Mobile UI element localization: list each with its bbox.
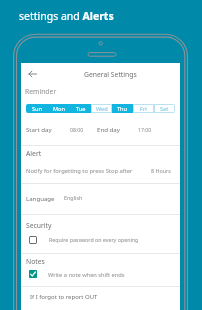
button[interactable]: Sun [26,104,48,113]
staticText: Sun [32,105,42,113]
button[interactable]: Back [25,66,41,82]
button[interactable]: Mon [48,104,70,113]
staticText: settings and Alerts [19,9,114,23]
staticText: Security [26,221,52,230]
staticText: Require password on every opening [49,236,139,243]
staticText: Tue [76,105,86,113]
button[interactable] [21,117,180,144]
staticText: Start day [26,125,52,133]
button[interactable] [21,232,180,249]
staticText: Sat [160,105,169,113]
button[interactable] [21,160,180,182]
button[interactable]: Tue [70,104,91,113]
staticText: English [64,194,83,201]
staticText: Notes [26,257,45,266]
staticText: Wed [96,105,108,113]
button[interactable] [21,266,180,283]
staticText: Fri [140,105,147,113]
staticText: Mon [53,105,65,113]
staticText: Write a note when shift ends [48,271,125,279]
staticText: Reminder [25,87,57,96]
button[interactable]: Sat [154,104,175,113]
staticText: Language [26,194,55,202]
button[interactable] [21,183,180,214]
button[interactable]: Fri [133,104,154,113]
staticText: 17:00 [138,126,152,133]
button[interactable] [21,287,180,310]
staticText: Notify for forgetting to press Stop afte… [26,167,133,175]
staticText: Alert [26,149,42,158]
staticText: 08:00 [70,126,84,133]
staticText: General Settings [84,70,137,79]
button[interactable]: Thu [112,104,133,113]
staticText: End day [97,125,120,133]
staticText: If I forgot to report OUT [30,293,98,301]
button[interactable]: Wed [91,104,112,113]
staticText: 8 Hours [151,167,171,174]
staticText: Thu [117,105,128,113]
